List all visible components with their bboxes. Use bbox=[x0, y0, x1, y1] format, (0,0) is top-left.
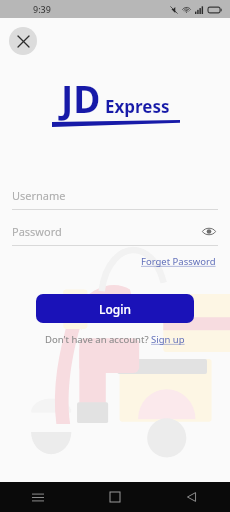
staticText: Don't have an account? bbox=[45, 333, 151, 346]
staticText: Forget Password bbox=[141, 255, 216, 268]
staticText: JD bbox=[61, 73, 101, 123]
staticText: Login bbox=[99, 301, 131, 317]
staticText: Sign up bbox=[151, 333, 185, 346]
button[interactable]: Home bbox=[76, 482, 153, 512]
button[interactable]: Recents bbox=[0, 482, 76, 512]
button[interactable]: Sign up bbox=[151, 333, 185, 346]
button[interactable]: Back bbox=[153, 482, 230, 512]
button[interactable]: Forget Password bbox=[139, 253, 218, 270]
staticText: Password bbox=[12, 224, 62, 239]
button[interactable]: Show password bbox=[200, 222, 218, 240]
button[interactable]: Login bbox=[36, 294, 194, 323]
button[interactable]: Close bbox=[9, 27, 37, 55]
staticText: 9:39 bbox=[33, 3, 51, 15]
staticText: Express bbox=[105, 95, 170, 118]
button[interactable]: Username bbox=[12, 185, 218, 205]
button[interactable]: Password bbox=[12, 221, 218, 241]
staticText: Username bbox=[12, 188, 66, 203]
